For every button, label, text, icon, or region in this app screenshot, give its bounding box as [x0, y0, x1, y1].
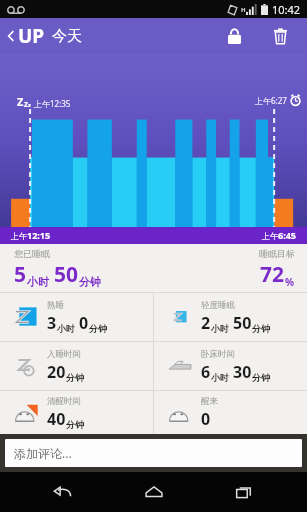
staticText: 您已睡眠	[14, 248, 50, 259]
staticText: UP	[18, 23, 45, 49]
staticText: 入睡时间	[47, 349, 81, 360]
staticText: 分钟	[66, 372, 84, 383]
staticText: 72	[260, 260, 285, 289]
button[interactable]: 您已睡眠	[0, 244, 307, 292]
button[interactable]: Recents	[216, 472, 272, 512]
staticText: 上午12:35	[34, 98, 71, 109]
staticText: 10:42	[272, 2, 301, 17]
staticText: 分钟	[79, 275, 101, 289]
button[interactable]: UP	[4, 23, 85, 49]
staticText: 12:15	[27, 229, 51, 241]
button[interactable]: Home	[126, 472, 182, 512]
button[interactable]: Delete	[263, 19, 297, 53]
staticText: 今天	[52, 27, 82, 46]
button[interactable]: Back	[35, 472, 91, 512]
staticText: 卧床时间	[201, 349, 235, 360]
staticText: 30	[233, 361, 252, 383]
staticText: 熟睡	[47, 300, 64, 311]
button[interactable]: 添加评论...	[5, 439, 302, 467]
button[interactable]: Lock	[217, 19, 251, 53]
staticText: 50	[233, 312, 252, 334]
staticText: 40	[47, 408, 66, 430]
staticText: 分钟	[252, 372, 270, 383]
button[interactable]: 卧床时间	[154, 342, 307, 390]
staticText: 分钟	[252, 323, 270, 334]
staticText: 3	[47, 312, 57, 334]
staticText: z	[28, 101, 31, 109]
staticText: 5	[14, 260, 27, 289]
staticText: 轻度睡眠	[201, 300, 235, 311]
staticText: 2	[201, 312, 211, 334]
staticText: 上午	[11, 231, 27, 241]
staticText: 分钟	[66, 419, 84, 430]
staticText: 20	[47, 361, 66, 383]
staticText: 小时	[27, 275, 49, 289]
staticText: 6	[201, 361, 211, 383]
staticText: 清醒时间	[47, 396, 81, 407]
staticText: 小时	[211, 372, 229, 383]
staticText: 0	[201, 408, 211, 430]
staticText: 上午	[262, 231, 278, 241]
staticText: 6:45	[278, 229, 296, 241]
staticText: %	[285, 275, 295, 289]
button[interactable]: 轻度睡眠	[154, 293, 307, 341]
staticText: 上午6:27	[255, 95, 287, 106]
staticText: 小时	[211, 323, 229, 334]
staticText: 小时	[57, 323, 75, 334]
staticText: 睡眠目标	[259, 248, 295, 259]
staticText: 0	[79, 312, 89, 334]
staticText: 分钟	[89, 323, 107, 334]
staticText: Z	[17, 94, 24, 109]
button[interactable]: 清醒时间	[0, 391, 153, 434]
button[interactable]: 醒来	[154, 391, 307, 434]
staticText: H	[241, 6, 246, 14]
staticText: 醒来	[201, 396, 218, 407]
button[interactable]: 入睡时间	[0, 342, 153, 390]
staticText: 50	[54, 260, 79, 289]
staticText: z	[24, 98, 28, 109]
staticText: 添加评论...	[14, 445, 72, 461]
button[interactable]: 熟睡	[0, 293, 153, 341]
